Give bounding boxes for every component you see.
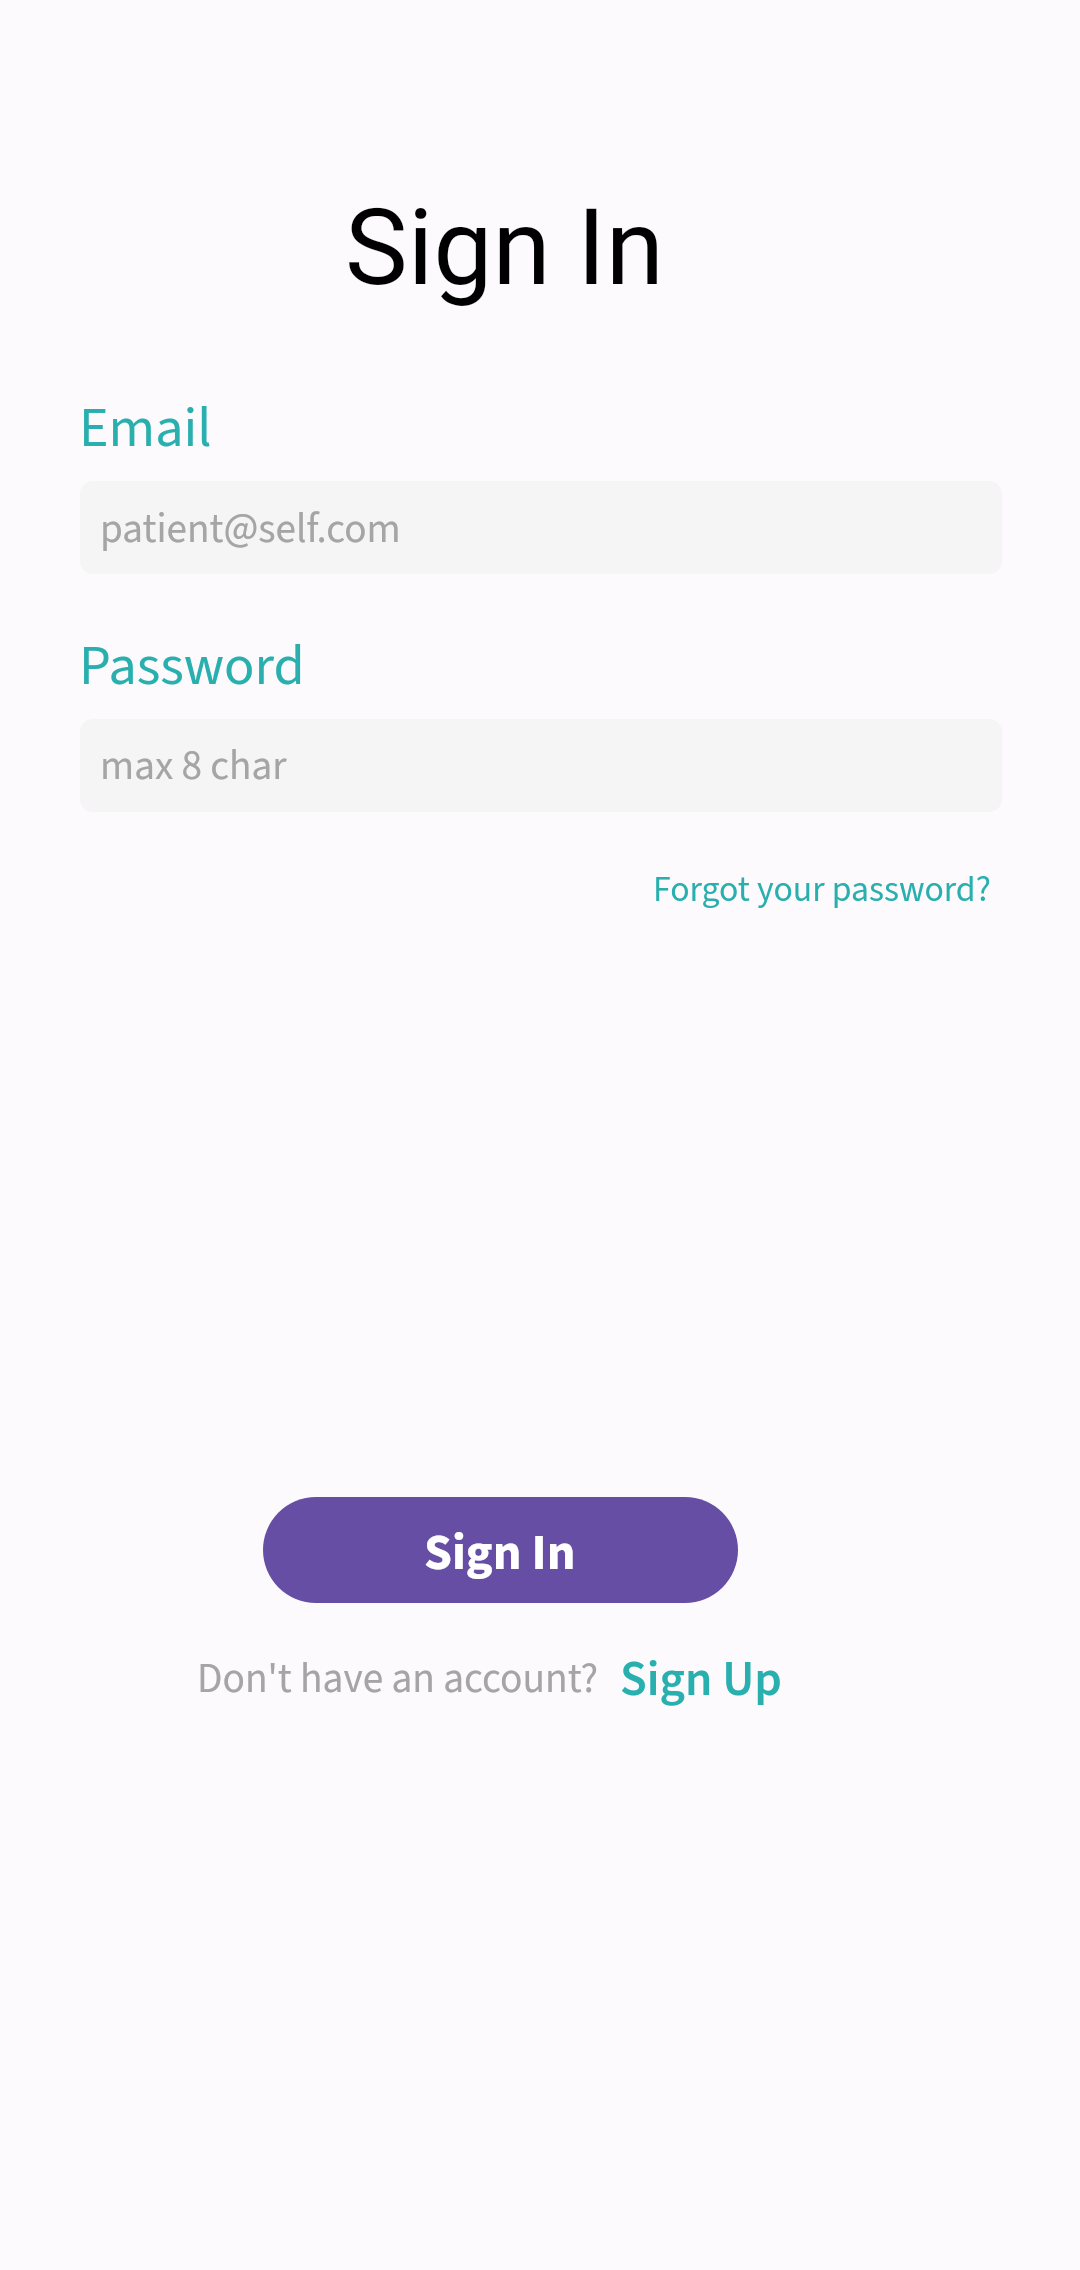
staticText: max 8 char xyxy=(100,737,287,796)
staticText: Email xyxy=(79,388,212,468)
staticText: Sign In xyxy=(345,186,664,310)
button[interactable]: Sign In xyxy=(263,1497,738,1603)
button[interactable]: Forgot your password? xyxy=(643,854,1001,925)
button[interactable]: Password field xyxy=(80,719,1002,812)
staticText: Don't have an account? xyxy=(197,1650,599,1709)
staticText: Sign Up xyxy=(620,1645,782,1715)
staticText: Password xyxy=(79,626,305,706)
staticText: Sign In xyxy=(424,1517,576,1589)
staticText: patient@self.com xyxy=(100,500,401,559)
staticText: Forgot your password? xyxy=(653,864,991,915)
button[interactable]: Email address field xyxy=(80,481,1002,574)
button[interactable]: Sign Up xyxy=(610,1635,792,1725)
